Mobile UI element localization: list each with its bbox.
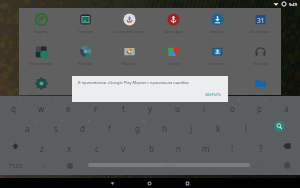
button[interactable]: Камера [107,40,151,72]
button[interactable]: Удалить [273,136,300,156]
staticText: 5 [129,98,132,103]
button[interactable]: x [56,136,83,156]
button[interactable] [107,72,151,95]
button[interactable]: s [42,116,69,136]
button[interactable] [151,72,195,95]
staticText: l [245,123,248,134]
button[interactable]: k [205,116,232,136]
staticText: 3 [74,98,77,103]
button[interactable]: q [0,96,27,116]
staticText: o [230,103,235,114]
button[interactable]: 31 [239,8,281,40]
staticText: Галерея [78,29,93,34]
button[interactable]: Поиск [262,116,296,136]
button[interactable]: Камера [63,40,107,72]
staticText: # [61,118,64,123]
staticText: 9 [238,98,241,103]
staticText: Музыка [253,61,268,66]
button[interactable]: v [110,136,137,156]
button[interactable]: Калькулятор [19,40,63,72]
staticText: & [143,118,146,123]
button[interactable]: t [110,96,137,116]
staticText: j [190,123,193,134]
staticText: y [148,103,153,114]
button[interactable]: Назад [97,178,127,188]
staticText: Карты [168,61,180,66]
button[interactable]: g [124,116,151,136]
button[interactable]: Настройки [19,72,63,95]
button[interactable]: Главный экран [134,178,164,188]
button[interactable]: b [138,136,165,156]
button[interactable]: y [137,96,164,116]
staticText: s [54,123,58,134]
button[interactable]: Настройки ввода [274,156,300,175]
staticText: Загрузки [209,29,226,34]
staticText: , [44,160,46,170]
button[interactable]: Смайлики [58,156,82,175]
button[interactable]: r [82,96,109,116]
button[interactable]: ЗАКРЫТЬ [203,90,224,99]
button[interactable]: w [28,96,55,116]
staticText: Голосовой поиск [113,29,145,34]
button[interactable]: Загрузки [195,8,239,40]
staticText: Диктофон [164,29,183,34]
button[interactable]: Shift [1,136,29,156]
button[interactable]: a [14,116,41,136]
staticText: ! [231,143,234,154]
staticText: 7 [183,98,186,103]
button[interactable]: Голосовой поиск [107,8,151,40]
staticText: g [135,123,140,134]
staticText: b [149,143,154,154]
button[interactable]: o [219,96,246,116]
button[interactable]: n [165,136,192,156]
staticText: f [108,123,111,134]
button[interactable]: p [246,96,273,116]
button[interactable]: d [69,116,96,136]
button[interactable]: Обзор [172,178,202,188]
button[interactable] [195,72,239,95]
button[interactable]: Проводник [239,72,281,95]
button[interactable]: z [28,136,55,156]
button[interactable]: m [192,136,219,156]
staticText: ( [225,118,227,123]
staticText: а [284,103,289,114]
button[interactable]: i [191,96,218,116]
staticText: a [25,123,30,134]
staticText: ?123 [9,162,22,170]
staticText: . [260,160,262,170]
staticText: z [40,143,44,154]
button[interactable]: u [164,96,191,116]
staticText: c [95,143,99,154]
staticText: 8 [210,98,213,103]
staticText: Браузер [34,29,49,34]
button[interactable]: Браузер [19,8,63,40]
button[interactable]: h [151,116,178,136]
button[interactable]: QWERTY [84,156,254,175]
button[interactable]: Музыка [239,40,281,72]
button[interactable]: Карты [151,40,195,72]
button[interactable]: Контакты [195,40,239,72]
button[interactable] [63,72,107,95]
button[interactable]: f [96,116,123,136]
button[interactable]: e [55,96,82,116]
staticText: x [67,143,72,154]
button[interactable]: Галерея [63,8,107,40]
button[interactable]: а [273,96,300,116]
staticText: v [121,143,126,154]
button[interactable]: ?123 [0,156,30,175]
button[interactable]: Диктофон [151,8,195,40]
